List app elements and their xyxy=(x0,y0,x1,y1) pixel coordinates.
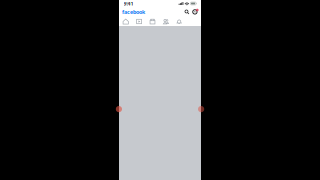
button[interactable]: Home xyxy=(119,17,132,26)
button[interactable]: Marketplace xyxy=(146,17,159,26)
staticText: 9:41 xyxy=(124,0,134,7)
button[interactable]: Notifications xyxy=(173,17,186,26)
button[interactable]: Search xyxy=(183,7,191,16)
button[interactable]: Groups xyxy=(159,17,173,26)
button[interactable]: Video xyxy=(132,17,146,26)
staticText: facebook xyxy=(122,8,145,16)
button[interactable]: Messenger xyxy=(191,7,199,16)
